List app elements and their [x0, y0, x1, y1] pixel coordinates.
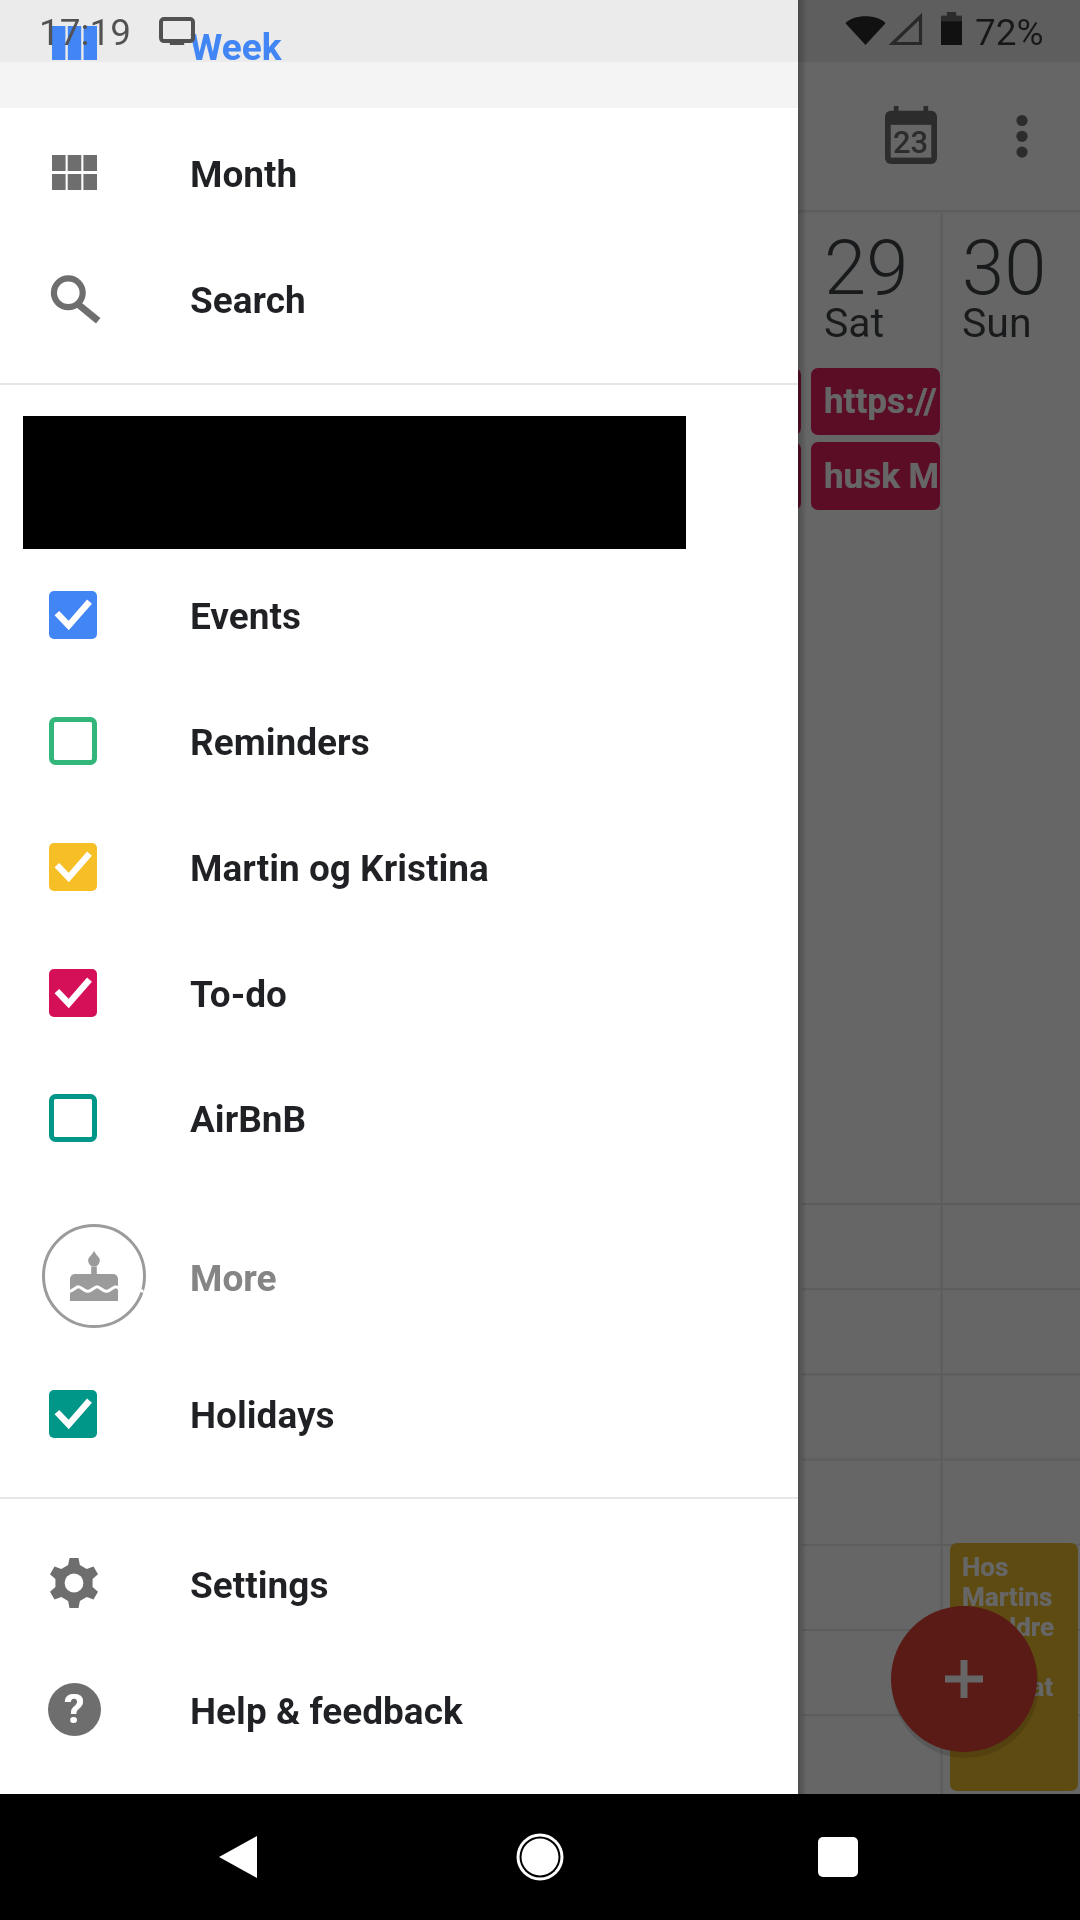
- button[interactable]: Home: [480, 1794, 600, 1920]
- staticText: Month: [190, 153, 298, 196]
- button[interactable]: Back: [178, 1794, 298, 1920]
- staticText: ?: [64, 1685, 85, 1733]
- staticText: 30: [962, 223, 1047, 312]
- staticText: To-do: [190, 973, 287, 1016]
- button[interactable]: Month: [0, 109, 798, 235]
- staticText: Sun: [962, 299, 1032, 347]
- button[interactable]: husk M: [811, 442, 940, 510]
- button[interactable]: Jump to today: [869, 103, 953, 167]
- button[interactable]: Settings: [0, 1520, 798, 1646]
- staticText: More: [190, 1257, 277, 1300]
- button[interactable]: Search: [0, 235, 798, 361]
- staticText: https://: [824, 381, 937, 422]
- staticText: 29: [824, 223, 909, 312]
- button[interactable]: ?: [0, 1646, 798, 1772]
- staticText: Search: [190, 279, 306, 322]
- button[interactable]: To-do: [0, 930, 798, 1056]
- button[interactable]: https://: [811, 368, 940, 435]
- button[interactable]: AirBnB: [0, 1055, 798, 1181]
- staticText: husk M: [824, 456, 940, 497]
- staticText: Settings: [190, 1564, 329, 1607]
- button[interactable]: Holidays: [0, 1351, 798, 1477]
- staticText: Martin og Kristina: [190, 847, 489, 890]
- button[interactable]: More: [0, 1213, 798, 1339]
- staticText: Reminders: [190, 721, 370, 764]
- staticText: Events: [190, 595, 302, 638]
- button[interactable]: Create new event: [891, 1606, 1037, 1752]
- button[interactable]: Martin og Kristina: [0, 804, 798, 930]
- button[interactable]: More options: [986, 104, 1058, 168]
- staticText: Hos Martins foreldre og nattmat: [962, 1552, 1076, 1702]
- staticText: Help & feedback: [190, 1690, 463, 1733]
- button[interactable]: Recent apps: [778, 1794, 898, 1920]
- button[interactable]: Week: [0, 0, 798, 106]
- staticText: 17:19: [39, 11, 132, 54]
- button[interactable]: Hos Martins foreldre og nattmat: [950, 1543, 1078, 1791]
- staticText: Holidays: [190, 1394, 335, 1437]
- button[interactable]: Events: [0, 552, 798, 678]
- staticText: Week: [190, 26, 282, 69]
- staticText: AirBnB: [190, 1098, 307, 1141]
- staticText: Sat: [824, 299, 885, 347]
- staticText: 72%: [975, 11, 1044, 54]
- button[interactable]: Reminders: [0, 678, 798, 804]
- staticText: 23: [893, 124, 929, 160]
